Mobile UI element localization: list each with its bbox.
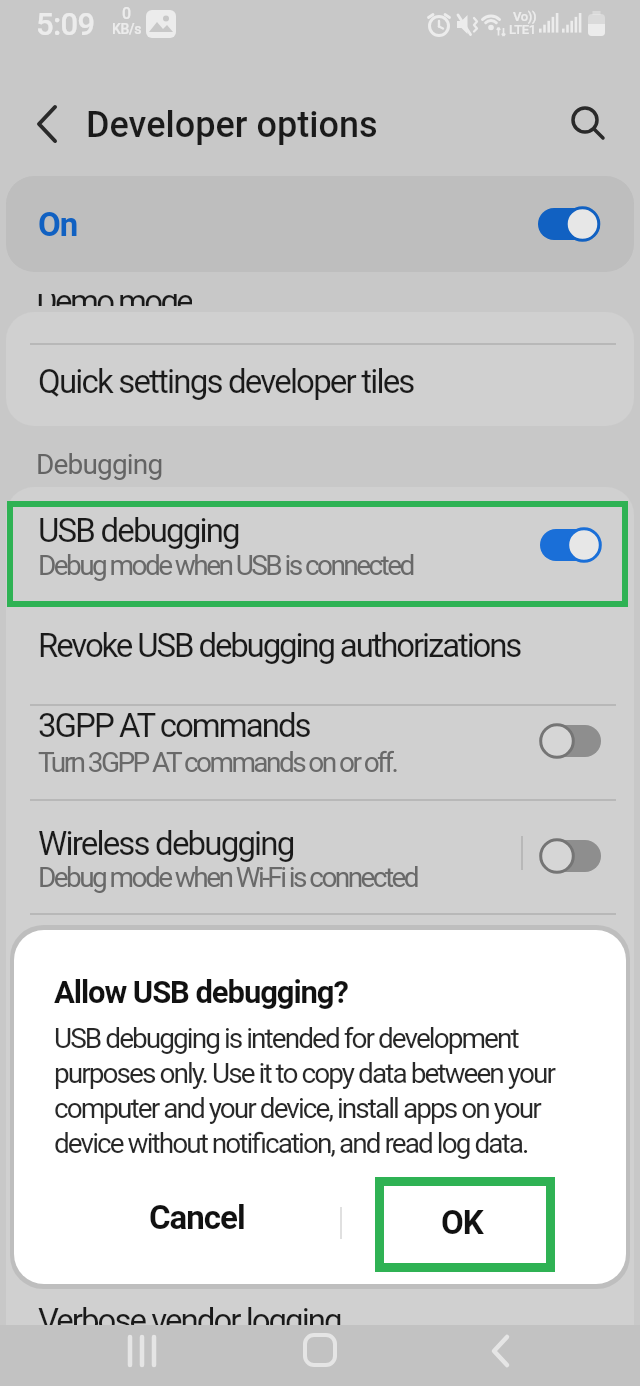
- staticText: Allow USB debugging?: [54, 974, 348, 1010]
- staticText: Verbose vendor logging: [38, 1301, 341, 1332]
- button[interactable]: USB debugging: [6, 487, 634, 605]
- staticText: On: [38, 205, 78, 244]
- staticText: 0: [122, 4, 131, 23]
- button[interactable]: [470, 1327, 530, 1383]
- staticText: LTE1: [509, 22, 536, 37]
- button[interactable]: Quick settings developer tiles: [6, 345, 634, 426]
- button[interactable]: [564, 98, 616, 150]
- button[interactable]: Demo mode: [0, 294, 640, 318]
- staticText: Quick settings developer tiles: [38, 362, 414, 401]
- staticText: device without notification, and read lo…: [54, 1127, 528, 1160]
- button[interactable]: OK: [327, 1185, 597, 1259]
- button[interactable]: Revoke USB debugging authorizations: [6, 605, 634, 705]
- staticText: Wireless debugging: [38, 824, 294, 863]
- staticText: Debugging: [36, 448, 163, 481]
- staticText: Demo mode: [36, 294, 192, 306]
- staticText: 5:09: [36, 6, 95, 42]
- button[interactable]: [290, 1327, 350, 1383]
- staticText: Cancel: [149, 1198, 245, 1237]
- staticText: 3GPP AT commands: [38, 706, 310, 745]
- button[interactable]: 3GPP AT commands: [6, 706, 634, 800]
- staticText: Turn 3GPP AT commands on or off.: [38, 746, 397, 779]
- staticText: Vo)): [513, 9, 537, 24]
- staticText: Debug mode when USB is connected: [38, 549, 413, 582]
- button[interactable]: [24, 100, 72, 148]
- button[interactable]: Cancel: [62, 1180, 332, 1254]
- button[interactable]: [112, 1327, 172, 1383]
- button[interactable]: On: [6, 176, 634, 272]
- staticText: computer and your device, install apps o…: [54, 1092, 540, 1125]
- staticText: KB/s: [112, 21, 142, 37]
- button[interactable]: [375, 1177, 555, 1272]
- button[interactable]: Wireless debugging: [6, 801, 634, 913]
- staticText: Revoke USB debugging authorizations: [38, 626, 521, 665]
- staticText: Debug mode when Wi-Fi is connected: [38, 861, 417, 894]
- staticText: USB debugging is intended for developmen…: [54, 1022, 518, 1055]
- staticText: USB debugging: [38, 511, 239, 550]
- staticText: OK: [441, 1203, 483, 1242]
- staticText: Developer options: [86, 104, 378, 146]
- staticText: purposes only. Use it to copy data betwe…: [54, 1057, 554, 1090]
- button[interactable]: [7, 501, 628, 607]
